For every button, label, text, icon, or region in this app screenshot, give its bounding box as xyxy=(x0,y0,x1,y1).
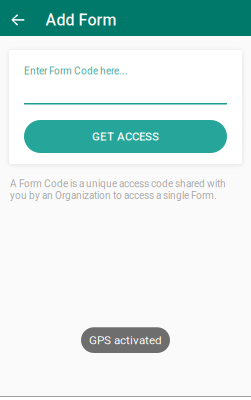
staticText: GET ACCESS xyxy=(92,130,159,143)
staticText: Add Form xyxy=(45,11,116,29)
staticText: GPS activated xyxy=(89,333,162,347)
button[interactable]: GET ACCESS xyxy=(24,120,227,153)
staticText: A Form Code is a unique access code shar… xyxy=(10,178,226,201)
button[interactable]: Back xyxy=(5,0,29,36)
staticText: Enter Form Code here... xyxy=(24,65,128,77)
